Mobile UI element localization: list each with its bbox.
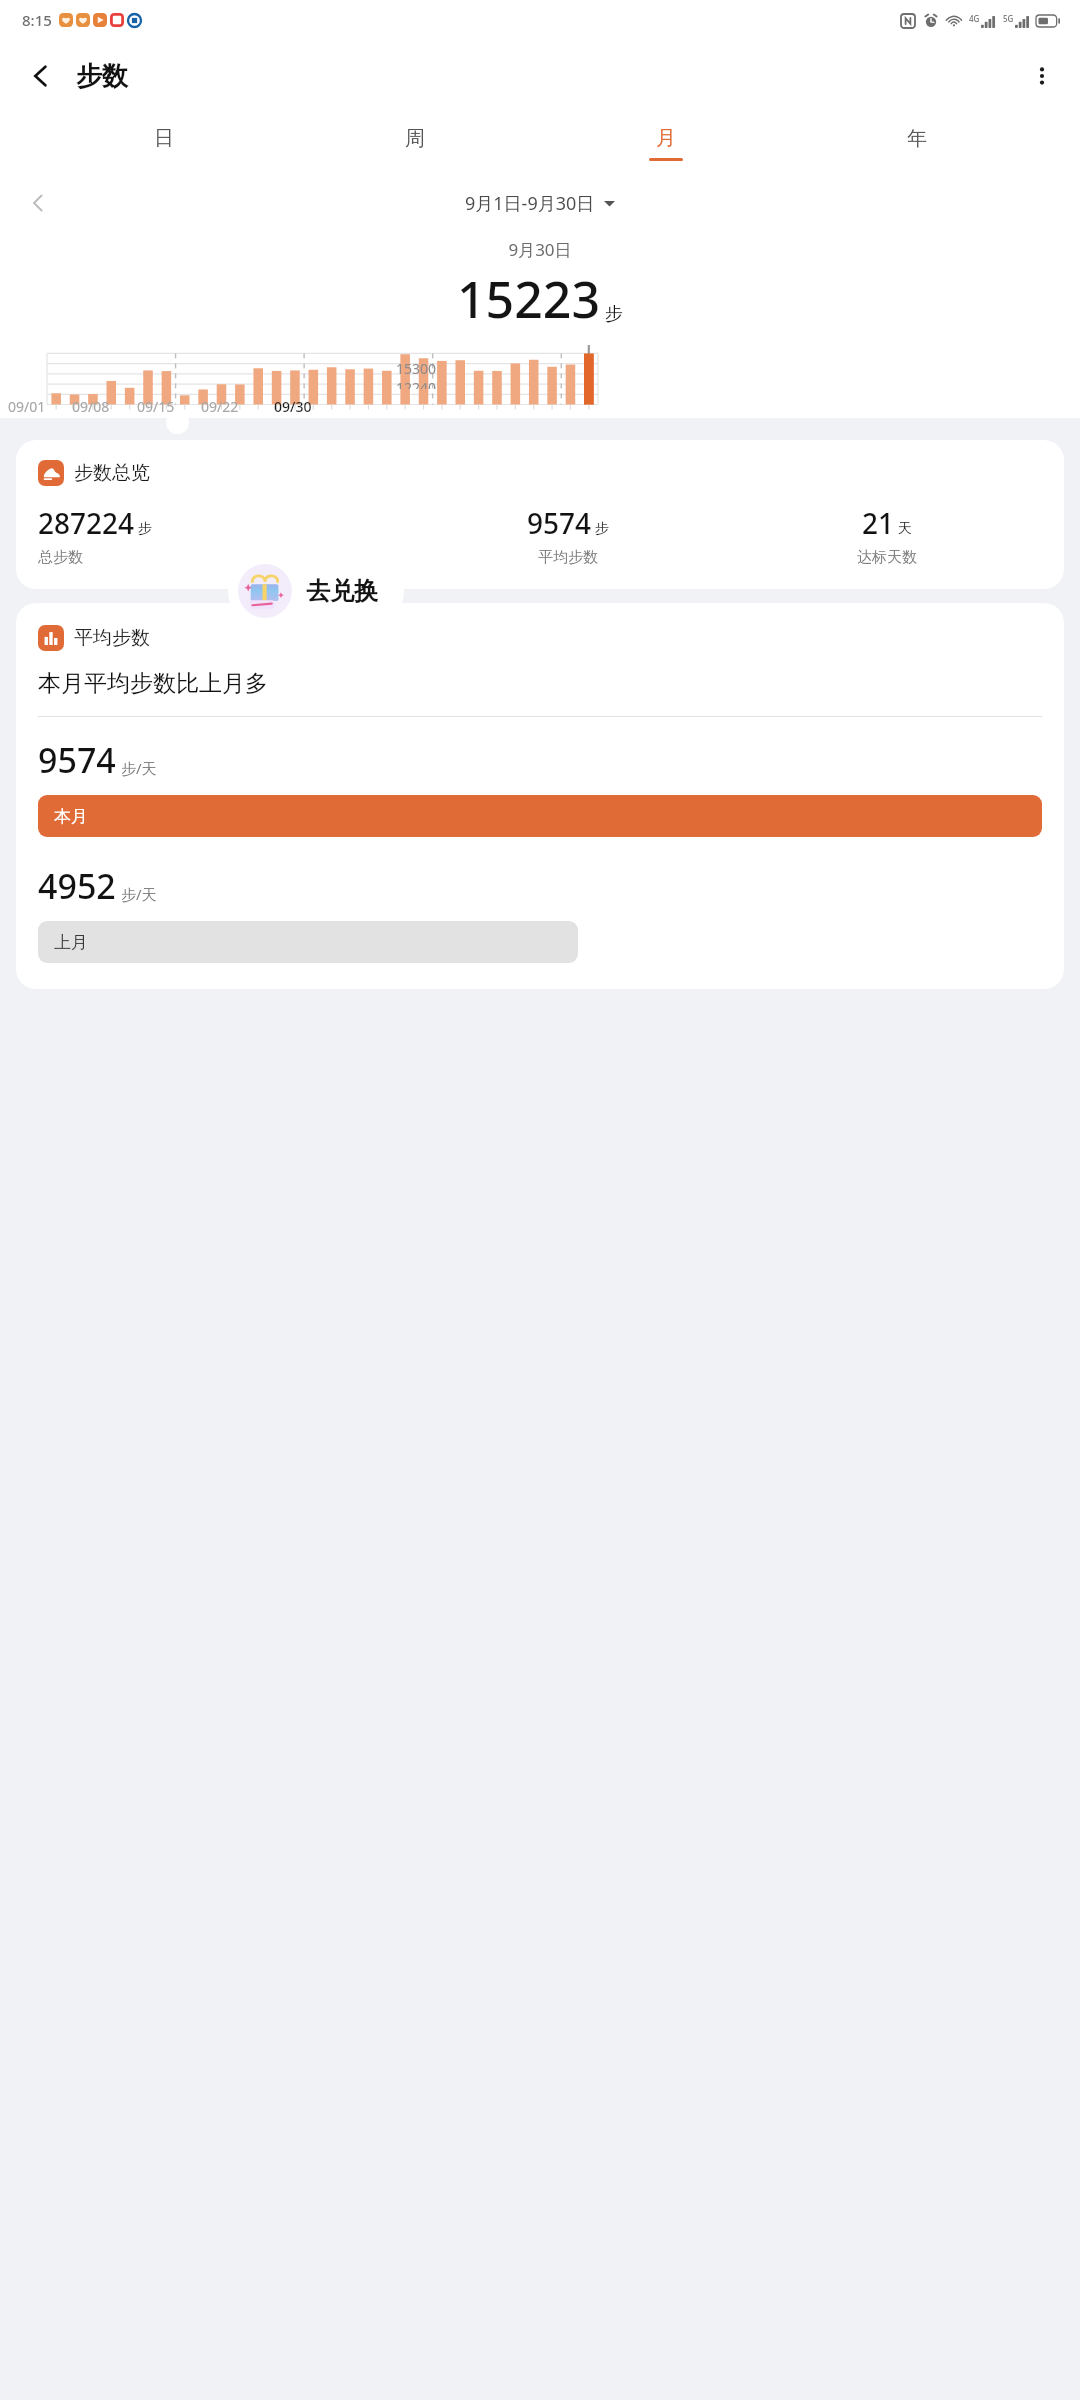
staticText: 9月30日 bbox=[508, 238, 572, 261]
staticText: 去兑换 bbox=[306, 576, 378, 606]
staticText: 4G bbox=[969, 13, 980, 24]
staticText: 15223 bbox=[457, 265, 600, 333]
button[interactable]: Back bbox=[14, 49, 68, 103]
button[interactable]: Previous period bbox=[16, 181, 60, 225]
staticText: 步 bbox=[605, 303, 623, 326]
staticText: 9月1日-9月30日 bbox=[465, 191, 595, 216]
staticText: 12240 bbox=[396, 378, 437, 389]
button[interactable]: 9月1日-9月30日 bbox=[465, 191, 615, 216]
button[interactable]: 月 bbox=[540, 112, 791, 174]
staticText: 8:15 bbox=[22, 10, 52, 30]
staticText: 9574 bbox=[38, 737, 116, 783]
staticText: 上月 bbox=[54, 932, 88, 953]
staticText: 9574 bbox=[527, 504, 592, 542]
button[interactable]: Expand bbox=[166, 411, 189, 434]
staticText: 日 bbox=[154, 126, 174, 151]
staticText: 平均步数 bbox=[538, 548, 598, 567]
staticText: 步数总览 bbox=[74, 461, 150, 485]
staticText: 15300 bbox=[396, 359, 437, 378]
staticText: 月 bbox=[656, 126, 676, 151]
staticText: 步数 bbox=[76, 60, 128, 93]
staticText: 本月平均步数比上月多 bbox=[38, 669, 268, 698]
button[interactable]: More options bbox=[1016, 50, 1068, 102]
staticText: 09/15 bbox=[137, 397, 175, 416]
button[interactable]: 平均步数 bbox=[16, 603, 1064, 989]
staticText: 平均步数 bbox=[74, 626, 150, 650]
staticText: 本月 bbox=[54, 806, 88, 827]
staticText: 步 bbox=[595, 520, 609, 538]
staticText: 21 bbox=[862, 504, 895, 542]
button[interactable]: 年 bbox=[791, 112, 1042, 174]
staticText: 09/08 bbox=[72, 397, 110, 416]
staticText: 4952 bbox=[38, 863, 116, 909]
button[interactable]: 步数总览 bbox=[16, 440, 1064, 589]
staticText: 步/天 bbox=[121, 884, 157, 904]
staticText: 周 bbox=[405, 126, 425, 151]
staticText: 步 bbox=[138, 520, 152, 538]
staticText: 09/01 bbox=[8, 397, 46, 416]
staticText: 总步数 bbox=[38, 548, 83, 567]
staticText: 天 bbox=[898, 520, 912, 538]
staticText: 年 bbox=[907, 126, 927, 151]
button[interactable]: 去兑换 bbox=[228, 554, 404, 628]
staticText: 09/30 bbox=[274, 397, 312, 416]
staticText: 步/天 bbox=[121, 758, 157, 778]
staticText: 达标天数 bbox=[857, 548, 917, 567]
button[interactable]: 日 bbox=[38, 112, 289, 174]
button[interactable]: 周 bbox=[289, 112, 540, 174]
staticText: 09/22 bbox=[201, 397, 239, 416]
staticText: 287224 bbox=[38, 504, 135, 542]
staticText: 5G bbox=[1003, 13, 1014, 24]
